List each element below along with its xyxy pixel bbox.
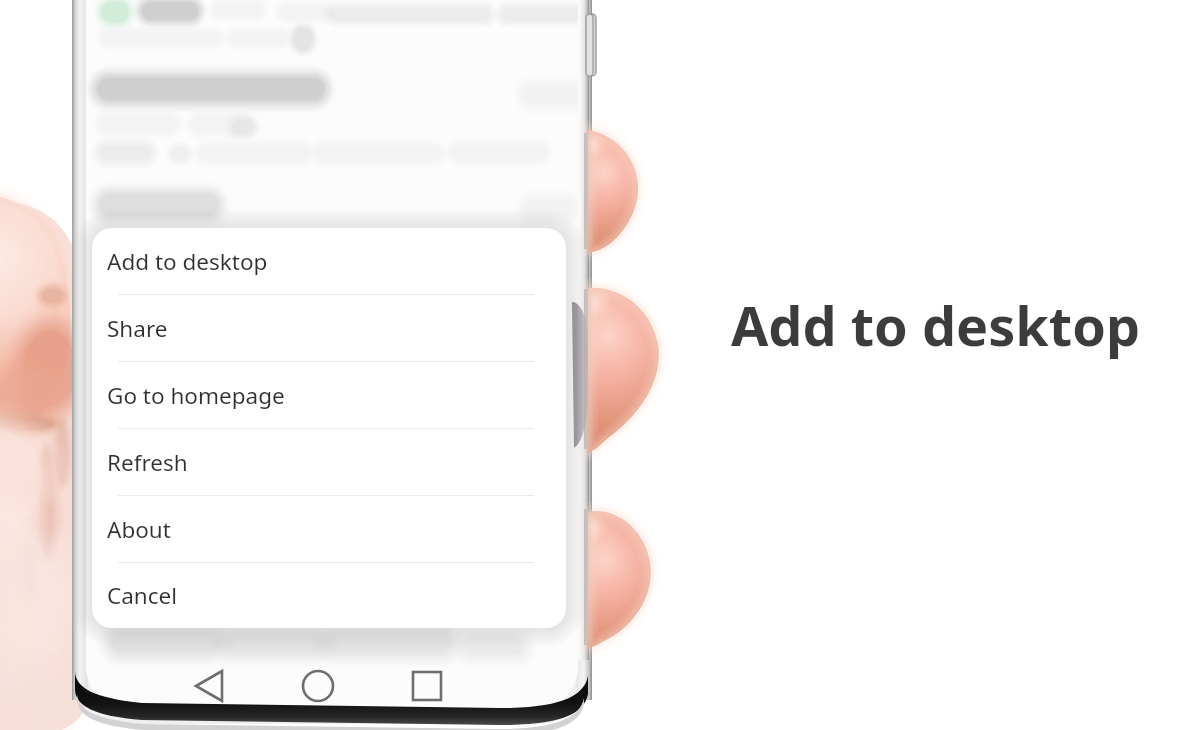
staticText: Add to desktop [107,246,268,277]
button[interactable]: Cancel [92,563,566,628]
button[interactable]: Add to desktop [92,228,566,295]
button[interactable]: Go to homepage [92,362,566,429]
button[interactable]: About [92,496,566,563]
staticText: Refresh [107,447,188,478]
button[interactable]: Recent apps [389,658,467,714]
button[interactable]: Home [280,658,358,714]
staticText: Add to desktop [731,288,1141,362]
button[interactable]: Share [92,295,566,362]
button[interactable]: Back [170,658,248,714]
staticText: About [107,514,171,545]
staticText: Go to homepage [107,380,285,411]
staticText: Cancel [107,580,178,611]
button[interactable]: Refresh [92,429,566,496]
staticText: Share [107,313,168,344]
